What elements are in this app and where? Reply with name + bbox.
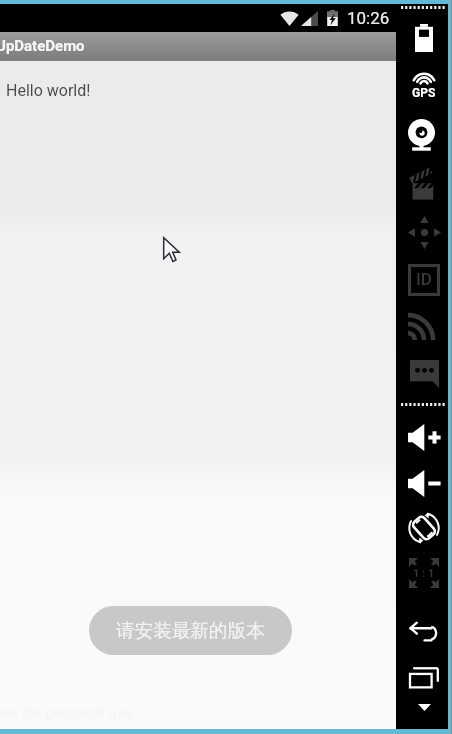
button[interactable]: Messages bbox=[398, 352, 450, 396]
staticText: GPS bbox=[412, 86, 436, 100]
button[interactable]: GPS bbox=[398, 64, 450, 108]
button[interactable]: Phone ID bbox=[398, 258, 450, 302]
button[interactable]: Overview bbox=[398, 655, 450, 699]
button[interactable]: Cellular bbox=[396, 304, 448, 348]
button[interactable]: Volume up bbox=[398, 415, 450, 459]
staticText: 请安装最新的版本 bbox=[116, 619, 265, 642]
button[interactable]: Rotate bbox=[398, 506, 450, 550]
staticText: 10:26 bbox=[347, 8, 390, 28]
staticText: 1 : 1 bbox=[413, 567, 435, 580]
button[interactable]: Volume down bbox=[398, 461, 450, 505]
button[interactable]: More bbox=[398, 685, 450, 729]
button[interactable]: Back bbox=[398, 608, 450, 652]
button[interactable]: Zoom 1 to 1 bbox=[398, 551, 450, 595]
staticText: Hello world! bbox=[6, 81, 91, 100]
button[interactable]: 请安装最新的版本 bbox=[89, 606, 292, 655]
button[interactable]: D-pad bbox=[398, 210, 450, 254]
button[interactable]: Camera bbox=[396, 113, 448, 157]
button[interactable]: Battery bbox=[398, 16, 450, 60]
staticText: ID bbox=[416, 269, 432, 289]
staticText: UpDateDemo bbox=[0, 37, 85, 55]
button[interactable]: Record screen bbox=[397, 162, 449, 206]
